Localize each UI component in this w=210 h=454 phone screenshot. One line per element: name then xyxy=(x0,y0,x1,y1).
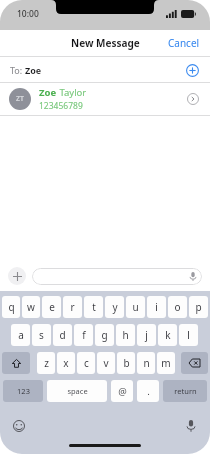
button[interactable]: a xyxy=(11,324,30,346)
button[interactable]: r xyxy=(63,296,82,318)
button[interactable]: Add contact xyxy=(182,60,202,80)
button[interactable]: k xyxy=(158,324,177,346)
button[interactable]: u xyxy=(126,296,145,318)
button[interactable]: Attach xyxy=(8,267,26,285)
button[interactable]: Shift xyxy=(2,352,30,374)
button[interactable]: return xyxy=(163,380,207,402)
button[interactable]: y xyxy=(105,296,124,318)
button[interactable]: v xyxy=(97,352,115,374)
button[interactable]: w xyxy=(22,296,40,318)
button[interactable]: h xyxy=(116,324,135,346)
button[interactable]: b xyxy=(117,352,135,374)
staticText: v xyxy=(103,356,109,370)
button[interactable]: e xyxy=(42,296,61,318)
button[interactable]: Emoji xyxy=(12,419,26,433)
staticText: y xyxy=(112,300,118,314)
button[interactable]: Cancel xyxy=(158,32,210,54)
staticText: 123 xyxy=(17,386,30,396)
button[interactable]: i xyxy=(147,296,166,318)
staticText: n xyxy=(143,356,150,370)
button[interactable]: t xyxy=(84,296,103,318)
button[interactable]: ZT xyxy=(0,83,210,115)
button[interactable]: n xyxy=(137,352,155,374)
staticText: b xyxy=(123,356,130,370)
button[interactable]: c xyxy=(77,352,95,374)
staticText: o xyxy=(174,300,181,314)
staticText: p xyxy=(195,300,202,314)
staticText: k xyxy=(165,328,171,342)
button[interactable]: Backspace xyxy=(181,352,208,374)
staticText: 10:00 xyxy=(17,8,39,20)
button[interactable]: d xyxy=(53,324,72,346)
button[interactable]: z xyxy=(37,352,55,374)
button[interactable]: 123 xyxy=(3,380,43,402)
staticText: l xyxy=(187,328,190,342)
staticText: return xyxy=(174,386,197,396)
button[interactable]: space xyxy=(47,380,107,402)
staticText: Taylor xyxy=(57,86,87,99)
staticText: s xyxy=(39,328,44,342)
staticText: space xyxy=(67,386,88,396)
staticText: To: xyxy=(10,64,25,76)
button[interactable]: l xyxy=(179,324,198,346)
button[interactable]: o xyxy=(168,296,187,318)
staticText: j xyxy=(145,328,148,342)
button[interactable]: x xyxy=(57,352,75,374)
button[interactable]: j xyxy=(137,324,156,346)
button[interactable] xyxy=(32,268,202,285)
staticText: t xyxy=(92,300,96,314)
button[interactable]: . xyxy=(137,380,159,402)
staticText: e xyxy=(49,300,55,314)
button[interactable]: q xyxy=(2,296,20,318)
staticText: Cancel xyxy=(168,36,200,50)
button[interactable]: Details xyxy=(184,90,202,108)
staticText: z xyxy=(44,356,49,370)
staticText: ZT xyxy=(16,94,24,104)
staticText: i xyxy=(155,300,158,314)
button[interactable]: m xyxy=(157,352,175,374)
staticText: New Message xyxy=(71,36,140,50)
staticText: r xyxy=(70,300,75,314)
staticText: f xyxy=(82,328,86,342)
button[interactable]: g xyxy=(95,324,114,346)
button[interactable]: s xyxy=(32,324,51,346)
staticText: h xyxy=(122,328,129,342)
staticText: u xyxy=(132,300,139,314)
staticText: @ xyxy=(118,385,127,398)
staticText: d xyxy=(59,328,66,342)
staticText: w xyxy=(27,300,35,314)
button[interactable]: @ xyxy=(111,380,133,402)
staticText: g xyxy=(101,328,108,342)
button[interactable]: Dictation xyxy=(184,419,198,433)
staticText: c xyxy=(84,356,89,370)
staticText: Zoe xyxy=(39,86,57,99)
staticText: Zoe xyxy=(25,64,42,76)
staticText: m xyxy=(161,356,171,370)
staticText: a xyxy=(18,328,24,342)
button[interactable]: p xyxy=(189,296,208,318)
staticText: . xyxy=(147,385,150,398)
staticText: q xyxy=(8,300,15,314)
button[interactable]: f xyxy=(74,324,93,346)
staticText: 123456789 xyxy=(39,100,83,112)
staticText: x xyxy=(63,356,69,370)
